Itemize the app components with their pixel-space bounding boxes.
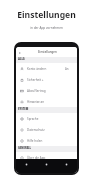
staticText: An: [65, 67, 69, 71]
staticText: ALLG: [18, 57, 25, 61]
button[interactable]: Sicherheit +: [16, 74, 77, 85]
button[interactable]: Sprache: [16, 113, 77, 124]
button[interactable]: Konto ändern: [16, 63, 77, 74]
staticText: Hilfe holen: [27, 139, 43, 143]
staticText: SYSTEM: [18, 107, 29, 111]
button[interactable]: Datenschutz: [16, 124, 77, 135]
button[interactable]: Suche: [37, 159, 56, 169]
button[interactable]: Über die App: [16, 152, 77, 163]
staticText: in der App vornehmen: [30, 26, 63, 30]
staticText: Konto ändern: [27, 67, 47, 71]
staticText: Datenschutz: [27, 128, 45, 132]
staticText: Hinweise an: [27, 100, 45, 104]
button[interactable]: Profil: [57, 159, 76, 169]
staticText: GENERELL: [18, 146, 32, 150]
staticText: Sprache: [27, 117, 39, 121]
button[interactable]: Hinweise an: [16, 96, 77, 107]
staticText: Abos/Vertrag: [27, 89, 46, 93]
button[interactable]: Abos/Vertrag: [16, 85, 77, 96]
staticText: Einstellungen: [17, 9, 76, 21]
staticText: Sicherheit +: [27, 78, 44, 82]
button[interactable]: Hilfe holen: [16, 135, 77, 146]
button[interactable]: Start: [17, 159, 36, 169]
button[interactable]: Zurück: [17, 50, 22, 55]
staticText: Einstellungen: [38, 50, 57, 54]
staticText: Über die App: [27, 156, 46, 160]
